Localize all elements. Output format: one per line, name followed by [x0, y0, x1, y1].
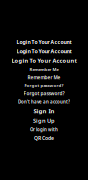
staticText: Or login with	[30, 126, 58, 132]
staticText: Forgot password?	[23, 90, 64, 97]
staticText: Login To Your Account	[16, 39, 71, 45]
staticText: Remember Me	[27, 74, 60, 81]
staticText: Remember Me	[29, 66, 58, 72]
staticText: Login To Your Account	[16, 47, 71, 55]
staticText: Login To Your Account	[11, 57, 76, 64]
staticText: QR Code	[34, 134, 54, 141]
staticText: Forgot password?	[24, 83, 63, 88]
staticText: Sign In	[33, 107, 54, 115]
staticText: Don't have an account?	[18, 99, 70, 105]
staticText: Sign Up	[33, 117, 55, 124]
